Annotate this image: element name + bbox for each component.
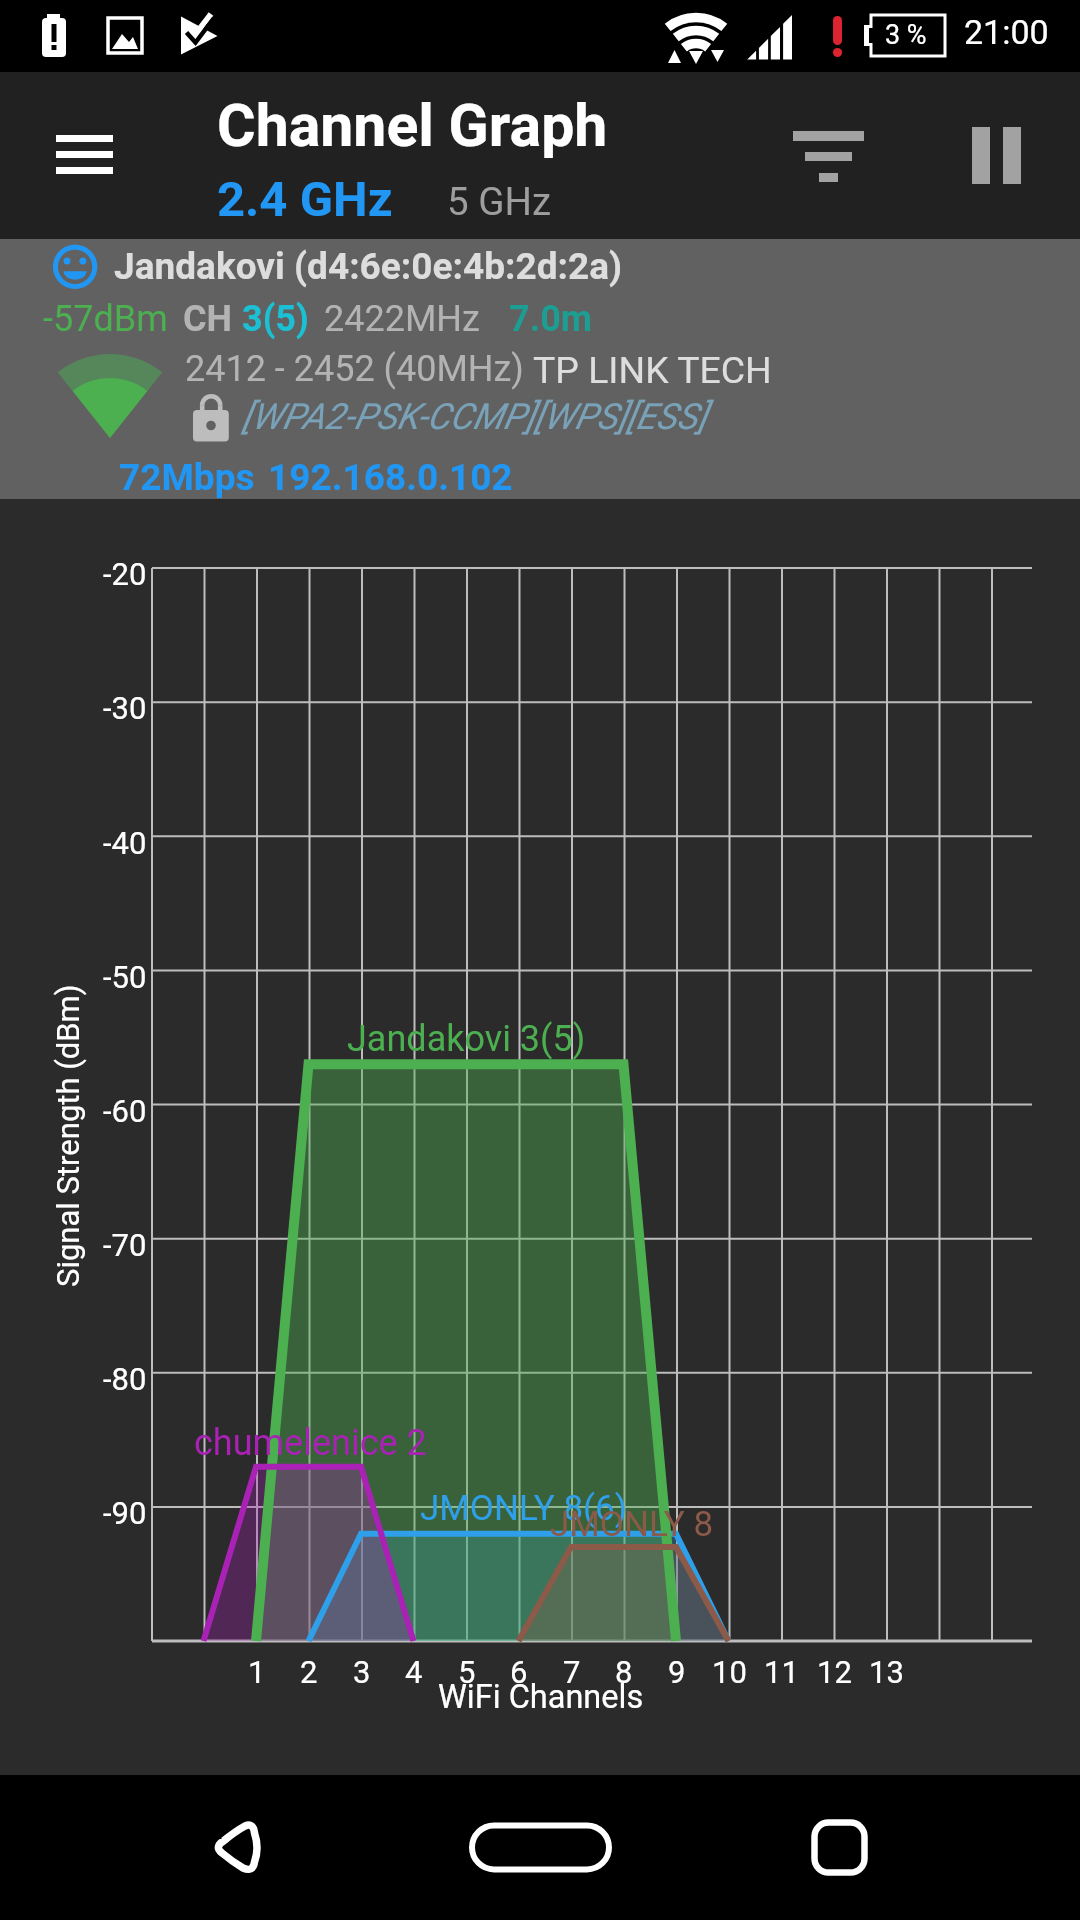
staticText: JMONLY 8(6) bbox=[420, 1488, 627, 1529]
staticText: JMONLY 8 bbox=[550, 1504, 714, 1545]
staticText: 8 bbox=[615, 1654, 633, 1690]
staticText: 1 bbox=[248, 1654, 266, 1690]
staticText: -60 bbox=[103, 1093, 147, 1129]
staticText: [WPA2-PSK-CCMP][WPS][ESS] bbox=[242, 396, 707, 438]
button[interactable]: Filter access points bbox=[770, 108, 882, 220]
staticText: 11 bbox=[764, 1654, 799, 1690]
button[interactable]: Home bbox=[462, 1813, 619, 1877]
button[interactable]: 5 GHz bbox=[431, 164, 561, 226]
staticText: 7.0m bbox=[509, 298, 592, 340]
staticText: 192.168.0.102 bbox=[268, 456, 513, 499]
button[interactable]: Recent apps bbox=[799, 1808, 880, 1889]
button[interactable]: Pause scanning bbox=[946, 108, 1058, 220]
staticText: 21:00 bbox=[964, 12, 1049, 52]
staticText: 5 bbox=[458, 1654, 476, 1690]
staticText: 13 bbox=[869, 1654, 904, 1690]
button[interactable]: 2.4 GHz bbox=[200, 164, 400, 226]
staticText: 72Mbps bbox=[119, 456, 255, 499]
staticText: chumelenice 2 bbox=[194, 1422, 427, 1464]
button[interactable]: Back bbox=[195, 1788, 285, 1878]
staticText: -70 bbox=[103, 1227, 147, 1263]
staticText: 2 bbox=[300, 1654, 318, 1690]
staticText: Signal Strength (dBm) bbox=[50, 984, 86, 1287]
staticText: -80 bbox=[103, 1361, 147, 1397]
staticText: -40 bbox=[103, 825, 147, 861]
staticText: 6 bbox=[510, 1654, 528, 1690]
staticText: 3 bbox=[353, 1654, 371, 1690]
button[interactable]: Open navigation drawer bbox=[14, 94, 114, 194]
staticText: 10 bbox=[712, 1654, 747, 1690]
staticText: 3(5) bbox=[242, 298, 309, 340]
staticText: 5 GHz bbox=[447, 179, 551, 224]
staticText: -50 bbox=[103, 959, 147, 995]
staticText: -90 bbox=[103, 1495, 147, 1531]
staticText: Channel Graph bbox=[217, 91, 608, 160]
staticText: Jandakovi (d4:6e:0e:4b:2d:2a) bbox=[114, 245, 623, 288]
staticText: 12 bbox=[817, 1654, 852, 1690]
staticText: CH bbox=[183, 298, 233, 340]
staticText: 2412 - 2452 (40MHz) bbox=[185, 348, 524, 390]
staticText: -57dBm bbox=[43, 298, 168, 340]
staticText: -30 bbox=[103, 690, 147, 726]
staticText: TP LINK TECH bbox=[533, 348, 772, 392]
staticText: WiFi Channels bbox=[438, 1678, 644, 1716]
staticText: 2.4 GHz bbox=[217, 171, 393, 228]
staticText: Jandakovi 3(5) bbox=[347, 1018, 586, 1060]
button[interactable]: Jandakovi (d4:6e:0e:4b:2d:2a) bbox=[0, 239, 1080, 499]
staticText: 3 % bbox=[885, 19, 927, 51]
staticText: 7 bbox=[563, 1654, 581, 1690]
staticText: 2422MHz bbox=[324, 298, 480, 340]
staticText: 9 bbox=[668, 1654, 686, 1690]
staticText: -20 bbox=[103, 556, 147, 592]
staticText: 4 bbox=[405, 1654, 423, 1690]
